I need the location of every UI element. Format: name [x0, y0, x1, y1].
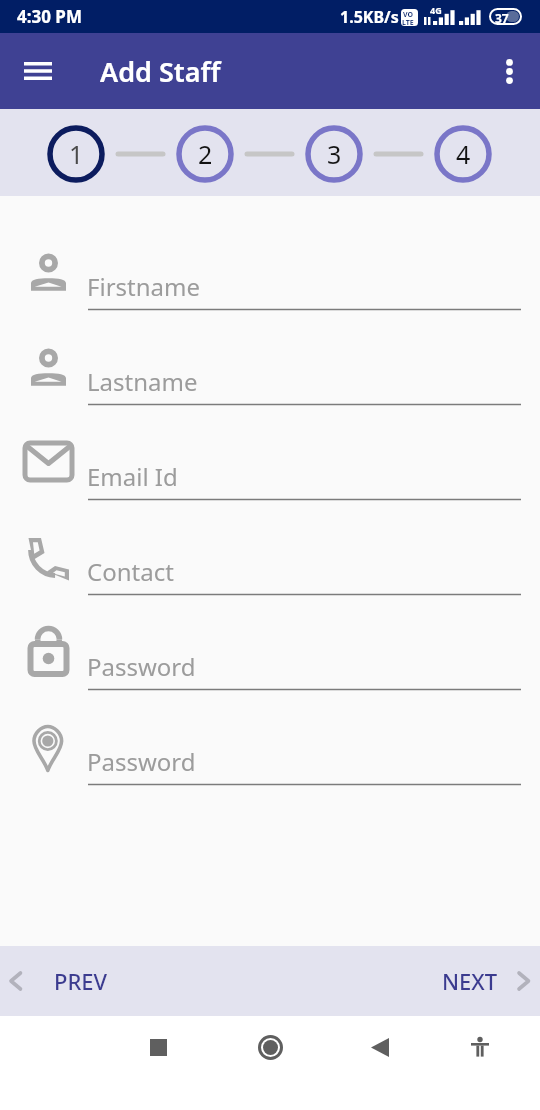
- staticText: VO: [403, 10, 414, 20]
- staticText: 1.5KB/s: [340, 6, 399, 28]
- staticText: 4:30 PM: [17, 5, 82, 28]
- button[interactable]: Firstname: [0, 240, 540, 335]
- button[interactable]: Lastname: [0, 335, 540, 430]
- button[interactable]: Password: [0, 715, 540, 810]
- staticText: Contact: [87, 555, 174, 588]
- staticText: 4: [456, 137, 471, 171]
- button[interactable]: Home: [250, 1027, 290, 1067]
- button[interactable]: Recent apps: [138, 1027, 178, 1067]
- button[interactable]: Accessibility: [460, 1027, 500, 1067]
- button[interactable]: 1: [47, 125, 105, 183]
- staticText: 2: [198, 137, 213, 171]
- button[interactable]: PREV: [0, 946, 125, 1016]
- button[interactable]: Contact: [0, 525, 540, 620]
- button[interactable]: 2: [176, 125, 234, 183]
- button[interactable]: Password: [0, 620, 540, 715]
- staticText: 4G: [430, 4, 442, 16]
- staticText: Firstname: [87, 270, 200, 303]
- staticText: Add Staff: [100, 53, 221, 90]
- staticText: PREV: [54, 966, 108, 996]
- staticText: 37: [495, 10, 509, 26]
- button[interactable]: Back: [360, 1027, 400, 1067]
- staticText: Email Id: [87, 460, 178, 493]
- staticText: 3: [327, 137, 342, 171]
- button[interactable]: NEXT: [415, 946, 540, 1016]
- staticText: NEXT: [442, 966, 498, 996]
- button[interactable]: Email Id: [0, 430, 540, 525]
- staticText: Lastname: [87, 365, 198, 398]
- staticText: 1: [69, 137, 84, 171]
- button[interactable]: 4: [434, 125, 492, 183]
- staticText: Password: [87, 650, 196, 683]
- button[interactable]: Open navigation menu: [10, 43, 66, 99]
- button[interactable]: 3: [305, 125, 363, 183]
- staticText: Password: [87, 745, 196, 778]
- staticText: LTE: [402, 18, 414, 28]
- button[interactable]: More options: [485, 47, 533, 95]
